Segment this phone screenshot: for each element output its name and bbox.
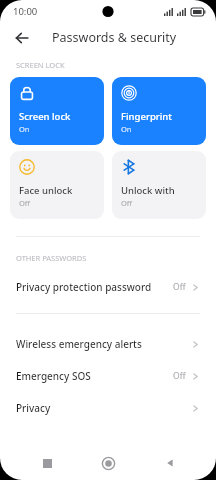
staticText: OTHER PASSWORDS <box>16 253 87 263</box>
button[interactable]: Wireless emergency alerts <box>0 328 216 360</box>
button[interactable]: Home <box>93 448 123 478</box>
staticText: Unlock with Bluetooth <box>121 184 202 197</box>
staticText: Privacy <box>16 401 191 415</box>
staticText: SCREEN LOCK <box>16 60 65 70</box>
staticText: Off <box>173 370 186 382</box>
staticText: Emergency SOS <box>16 369 173 383</box>
staticText: Wireless emergency alerts <box>16 337 191 351</box>
staticText: Off <box>121 198 133 208</box>
button[interactable]: Back <box>9 25 34 50</box>
staticText: On <box>19 124 30 134</box>
button[interactable]: Fingerprint unlock <box>112 77 206 145</box>
button[interactable]: Unlock with Bluetooth <box>112 151 206 219</box>
staticText: Off <box>19 198 31 208</box>
staticText: 10:00 <box>13 5 38 18</box>
button[interactable]: Privacy protection password <box>0 271 216 303</box>
button[interactable]: Privacy <box>0 392 216 424</box>
staticText: Privacy protection password <box>16 280 173 294</box>
staticText: On <box>121 124 132 134</box>
staticText: Passwords & security <box>52 29 177 46</box>
button[interactable]: Back <box>155 448 185 478</box>
staticText: Off <box>173 281 186 293</box>
button[interactable]: Face unlock <box>10 151 104 219</box>
staticText: Face unlock <box>19 184 73 197</box>
staticText: Screen lock <box>19 110 71 123</box>
button[interactable]: Recent apps <box>32 448 62 478</box>
staticText: Fingerprint unlock <box>121 110 202 123</box>
button[interactable]: Screen lock <box>10 77 104 145</box>
button[interactable]: Emergency SOS <box>0 360 216 392</box>
